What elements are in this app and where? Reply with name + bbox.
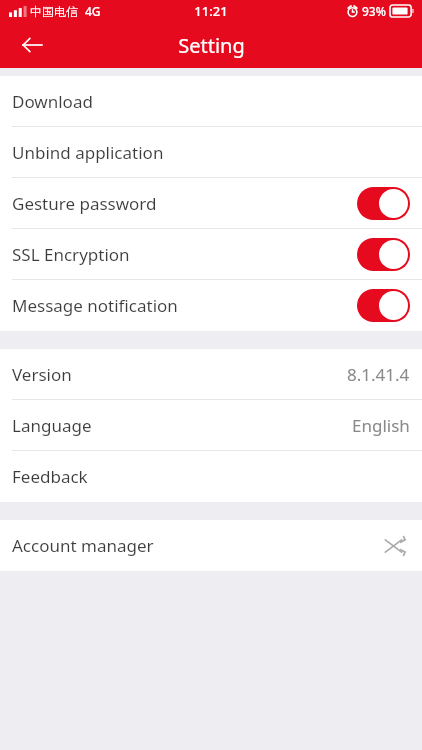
button[interactable]: Toggle on — [357, 289, 410, 322]
staticText: Version — [12, 363, 72, 386]
button[interactable]: Account manager — [0, 520, 422, 571]
staticText: SSL Encryption — [12, 243, 130, 266]
button[interactable]: SSL Encryption — [0, 229, 422, 280]
button[interactable]: Download — [0, 76, 422, 127]
button[interactable]: Feedback — [0, 451, 422, 502]
button[interactable]: Account manager — [380, 531, 410, 561]
button[interactable]: Version — [0, 349, 422, 400]
staticText: Download — [12, 90, 93, 113]
staticText: Account manager — [12, 534, 154, 557]
staticText: Feedback — [12, 465, 88, 488]
button[interactable]: Unbind application — [0, 127, 422, 178]
staticText: 11:21 — [194, 2, 228, 20]
staticText: 中国电信 — [30, 4, 78, 19]
button[interactable]: Message notification — [0, 280, 422, 331]
button[interactable]: Gesture password — [0, 178, 422, 229]
staticText: 8.1.41.4 — [347, 363, 410, 386]
staticText: English — [352, 414, 410, 437]
staticText: 4G — [85, 3, 101, 19]
staticText: Language — [12, 414, 92, 437]
button[interactable]: Toggle on — [357, 238, 410, 271]
staticText: Unbind application — [12, 141, 164, 164]
button[interactable]: Language — [0, 400, 422, 451]
button[interactable]: Back — [10, 23, 54, 67]
staticText: Gesture password — [12, 192, 157, 215]
staticText: Message notification — [12, 294, 178, 317]
staticText: 93% — [362, 3, 386, 19]
staticText: Setting — [178, 32, 245, 59]
button[interactable]: Toggle on — [357, 187, 410, 220]
